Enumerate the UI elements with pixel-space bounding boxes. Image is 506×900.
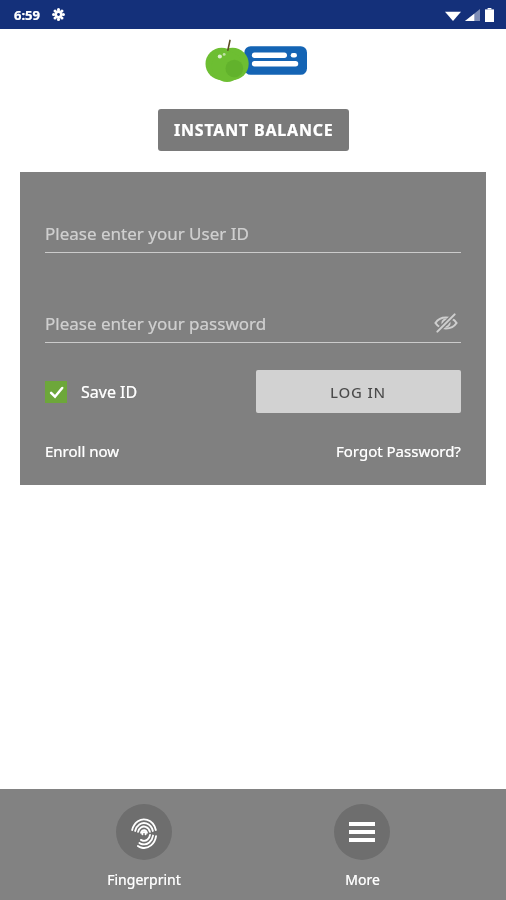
button[interactable]: Forgot Password?	[336, 437, 461, 465]
staticText: INSTANT BALANCE	[174, 119, 334, 141]
button[interactable]: Enroll now	[45, 437, 120, 465]
button[interactable]: More	[287, 789, 437, 900]
staticText: Fingerprint	[107, 870, 181, 889]
staticText: Please enter your password	[45, 312, 267, 335]
staticText: LOG IN	[330, 382, 387, 402]
button[interactable]: INSTANT BALANCE	[158, 109, 349, 151]
button[interactable]: Please enter your password	[45, 306, 461, 340]
staticText: 6:59	[14, 6, 40, 24]
staticText: Save ID	[81, 381, 138, 403]
staticText: Enroll now	[45, 441, 120, 461]
button[interactable]: Show password	[431, 308, 461, 338]
staticText: Please enter your User ID	[45, 222, 249, 245]
button[interactable]: LOG IN	[256, 370, 461, 413]
button[interactable]: Please enter your User ID	[45, 216, 461, 250]
button[interactable]: Save ID	[45, 381, 138, 403]
button[interactable]: Fingerprint	[69, 789, 219, 900]
staticText: Forgot Password?	[336, 441, 461, 461]
staticText: More	[345, 870, 380, 889]
